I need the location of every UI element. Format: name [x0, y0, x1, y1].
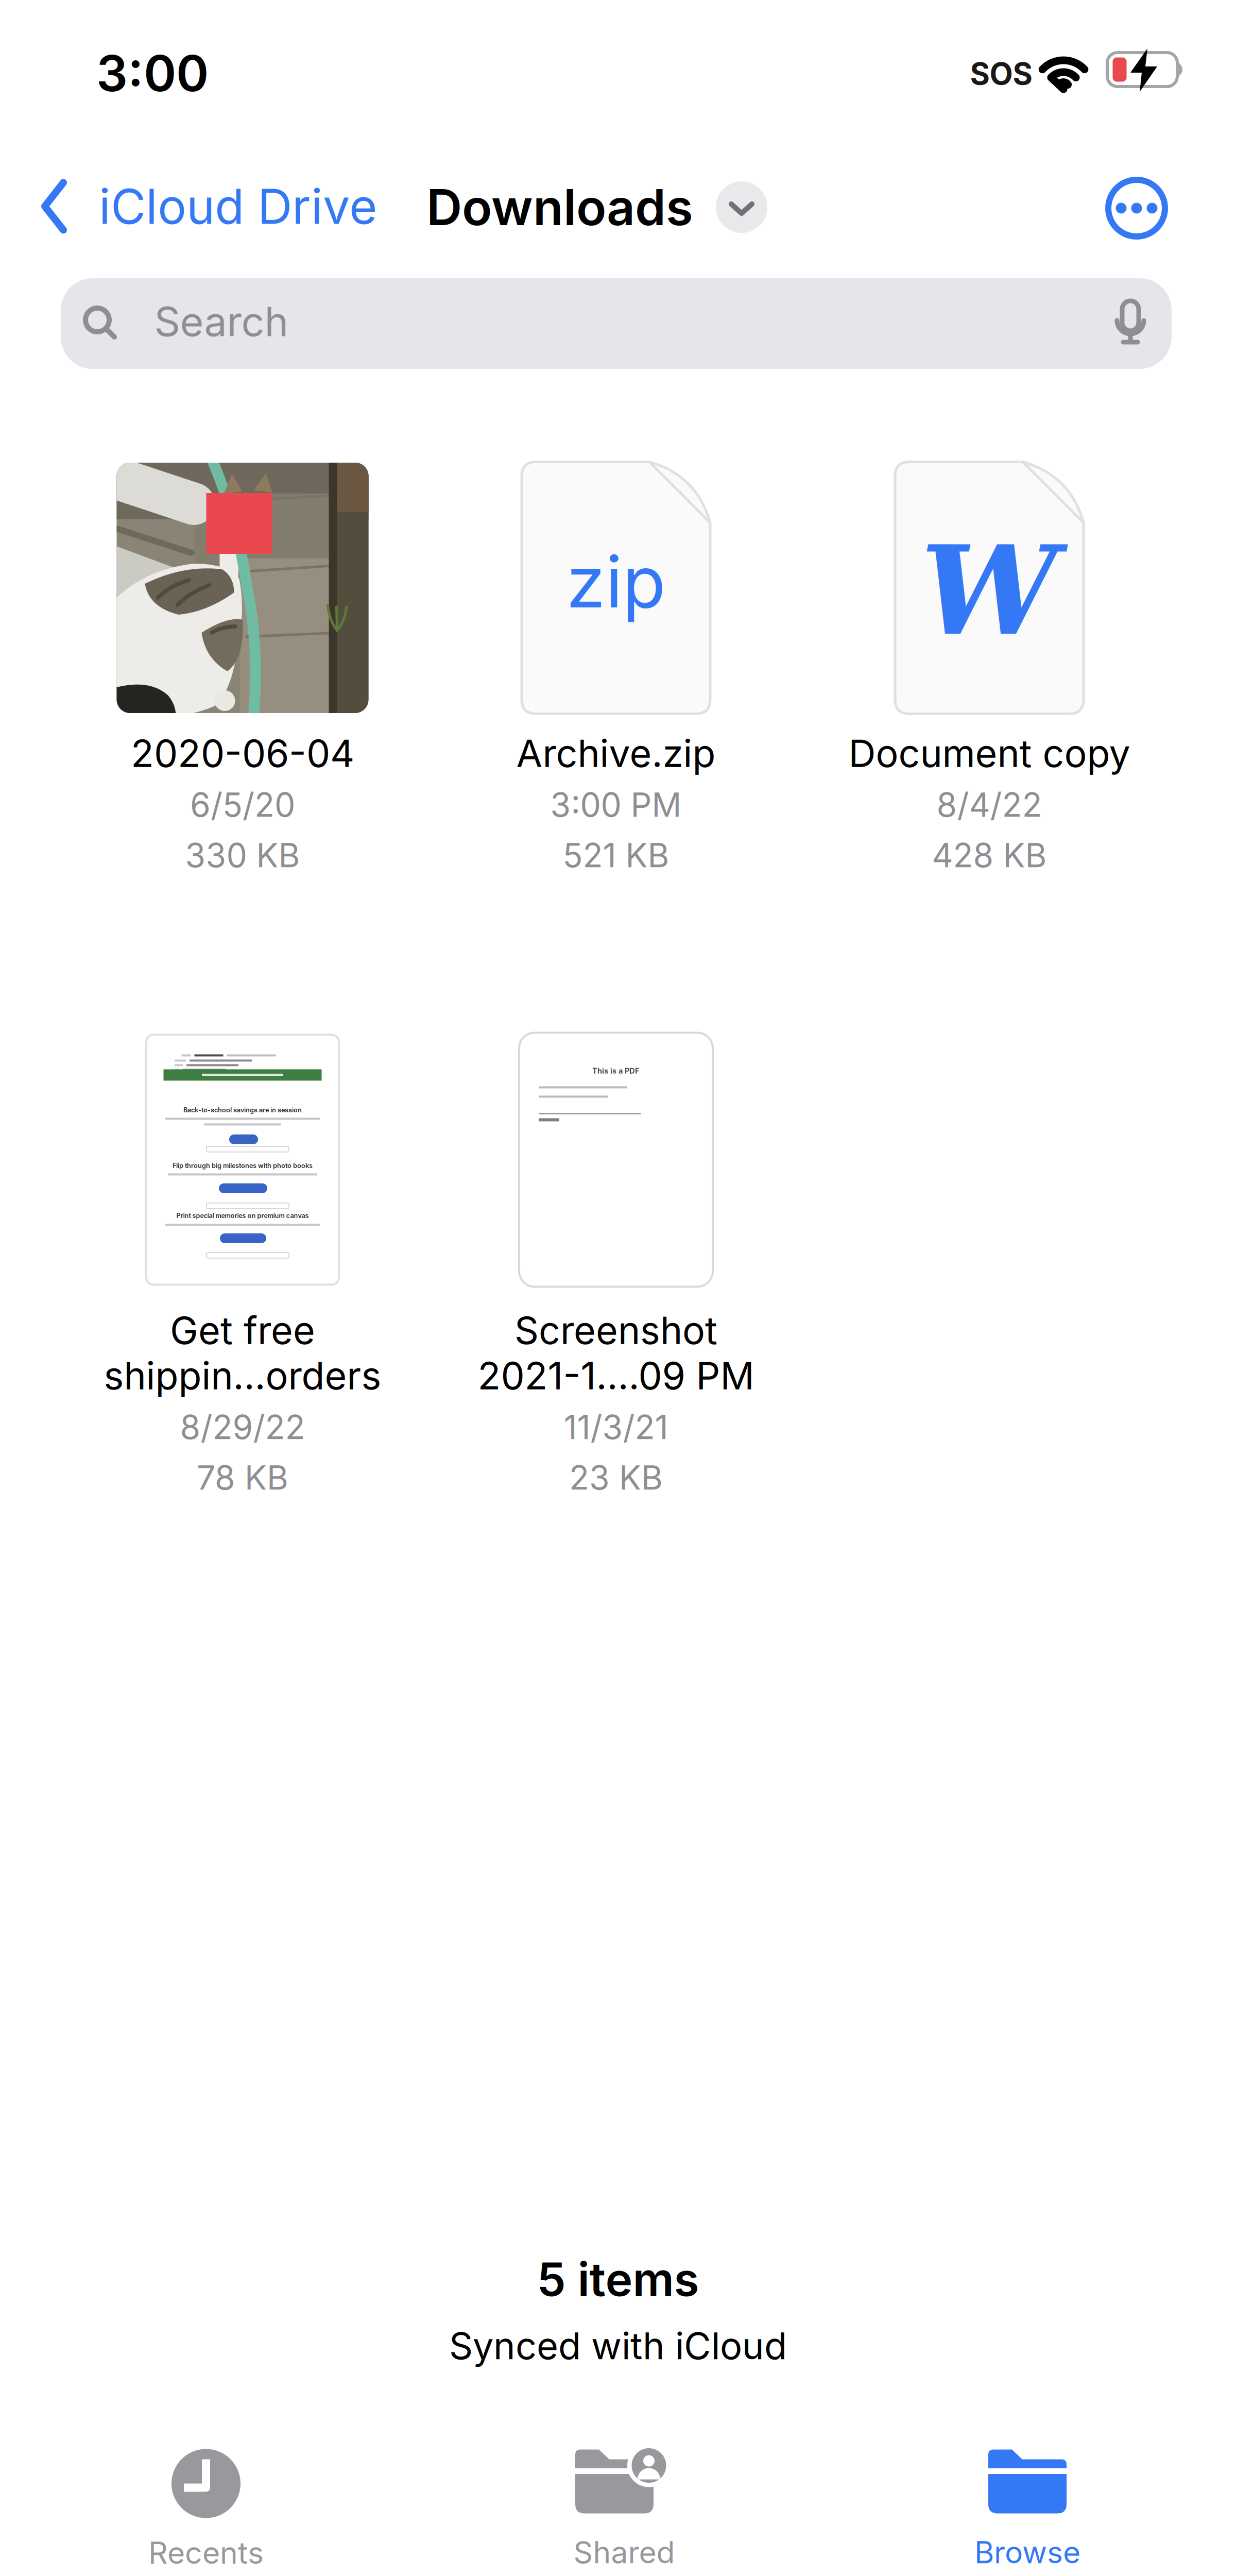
staticText: W	[921, 519, 1058, 663]
staticText: 330 KB	[185, 835, 300, 875]
button[interactable]: W	[801, 453, 1177, 891]
staticText: Document copy	[848, 730, 1130, 776]
staticText: iCloud Drive	[99, 177, 377, 235]
button[interactable]: 2020-06-04	[55, 453, 431, 891]
staticText: 428 KB	[932, 835, 1047, 875]
button[interactable]: This is a PDF	[428, 1025, 804, 1499]
staticText: Recents	[148, 2535, 264, 2571]
staticText: Downloads	[426, 177, 693, 237]
staticText: Browse	[974, 2534, 1080, 2571]
staticText: This is a PDF	[592, 1066, 640, 1075]
staticText: 3:00	[96, 43, 209, 103]
staticText: 11/3/21	[564, 1407, 668, 1447]
staticText: 8/29/22	[180, 1407, 305, 1447]
button[interactable]: Shared	[573, 2450, 675, 2571]
button[interactable]: Back-to-school savings are in session	[55, 1025, 431, 1499]
button[interactable]: iCloud Drive	[41, 177, 377, 235]
staticText: zip	[566, 539, 666, 624]
staticText: Archive.zip	[516, 730, 716, 776]
staticText: 2020-06-04	[131, 730, 354, 776]
staticText: Back-to-school savings are in session	[183, 1106, 302, 1114]
staticText: Get free	[170, 1307, 315, 1353]
button[interactable]: Search	[61, 278, 1172, 369]
staticText: Screenshot	[514, 1307, 717, 1353]
staticText: Synced with iCloud	[449, 2323, 787, 2368]
button[interactable]: zip	[428, 453, 804, 891]
staticText: Flip through big milestones with photo b…	[173, 1162, 313, 1170]
staticText: Shared	[573, 2534, 675, 2571]
staticText: 78 KB	[197, 1458, 288, 1498]
staticText: shippin...orders	[104, 1353, 381, 1398]
staticText: 6/5/20	[190, 785, 295, 825]
staticText: SOS	[970, 55, 1032, 92]
button[interactable]: Recents	[148, 2449, 264, 2571]
button[interactable]: More	[1105, 177, 1168, 240]
button[interactable]: Browse	[974, 2450, 1080, 2571]
staticText: 2021-1....09 PM	[478, 1353, 754, 1398]
staticText: Search	[154, 297, 289, 346]
staticText: 8/4/22	[937, 785, 1042, 825]
button[interactable]: Downloads	[426, 177, 767, 237]
staticText: 3:00 PM	[550, 785, 682, 825]
staticText: 5 items	[537, 2251, 699, 2307]
staticText: 23 KB	[569, 1458, 663, 1498]
staticText: 521 KB	[563, 835, 669, 875]
staticText: Print special memories on premium canvas	[176, 1212, 309, 1220]
